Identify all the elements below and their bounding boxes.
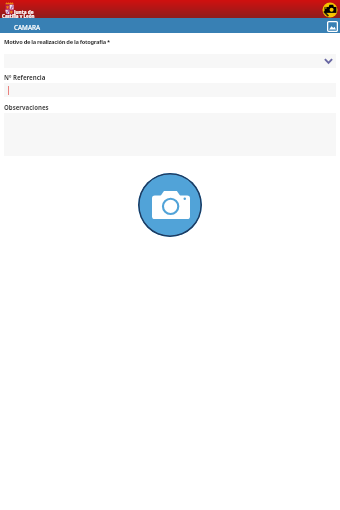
staticText: Observaciones [4, 103, 49, 111]
button[interactable]: Tomar foto [138, 173, 202, 237]
staticText: Castilla y León [2, 13, 35, 19]
button[interactable] [4, 54, 336, 68]
staticText: Nº Referencia [4, 73, 46, 81]
button[interactable] [4, 83, 336, 97]
button[interactable]: Galería [327, 21, 338, 32]
button[interactable]: Abrir cámara [322, 2, 338, 18]
staticText: Junta de [14, 9, 34, 15]
staticText: Motivo de la realización de la fotografí… [4, 38, 110, 46]
staticText: CAMARA [14, 23, 41, 32]
